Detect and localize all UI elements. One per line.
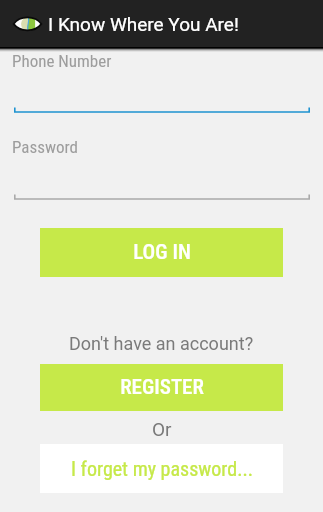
staticText: REGISTER xyxy=(120,375,204,400)
button[interactable]: REGISTER xyxy=(40,364,283,411)
staticText: I forget my password... xyxy=(71,457,253,480)
staticText: I Know Where You Are! xyxy=(48,13,239,35)
staticText: LOG IN xyxy=(133,240,191,265)
staticText: Phone Number xyxy=(12,51,112,71)
staticText: Or xyxy=(152,418,172,440)
button[interactable]: I forget my password... xyxy=(40,444,283,493)
staticText: Don't have an account? xyxy=(69,333,254,354)
staticText: Password xyxy=(12,137,79,157)
button[interactable]: LOG IN xyxy=(40,228,283,277)
